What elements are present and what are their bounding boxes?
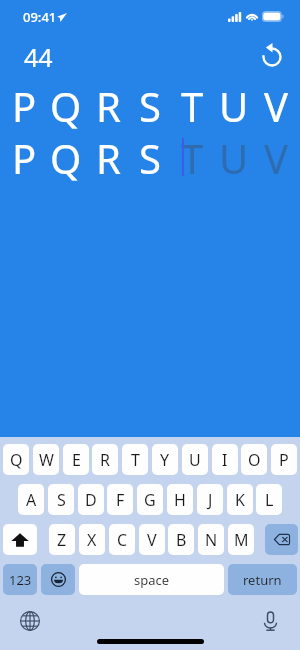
staticText: C [117,529,128,551]
staticText: P [12,79,37,131]
staticText: T [131,449,140,471]
staticText: G [144,489,156,511]
staticText: 09:41 [23,8,57,26]
staticText: J [208,489,213,511]
button[interactable]: D [78,484,104,515]
button[interactable]: S [48,484,74,515]
button[interactable]: Change keyboard [18,609,42,633]
button[interactable]: Q [3,444,29,475]
staticText: T [181,79,204,131]
staticText: B [176,529,187,551]
button[interactable]: C [109,524,135,555]
staticText: S [139,79,161,131]
staticText: return [243,571,282,589]
staticText: O [248,449,261,471]
staticText: K [235,489,245,511]
staticText: V [264,131,288,183]
staticText: U [189,449,201,471]
button[interactable]: Restart [254,38,290,74]
staticText: W [39,449,54,471]
button[interactable]: return [228,564,297,595]
staticText: D [85,489,97,511]
staticText: Q [50,131,82,183]
button[interactable]: A [18,484,44,515]
button[interactable]: I [212,444,238,475]
button[interactable]: Y [152,444,178,475]
button[interactable]: M [228,524,254,555]
staticText: S [139,131,161,183]
button[interactable]: U [182,444,208,475]
button[interactable]: Voice input [258,609,282,633]
button[interactable]: 123 [3,564,37,595]
button[interactable]: W [33,444,59,475]
button[interactable]: J [197,484,223,515]
staticText: U [219,131,249,183]
staticText: M [234,529,249,551]
staticText: Q [50,79,82,131]
button[interactable]: L [256,484,282,515]
button[interactable]: K [227,484,253,515]
staticText: R [96,131,121,183]
staticText: I [222,449,228,471]
button[interactable]: O [241,444,267,475]
staticText: P [12,131,37,183]
button[interactable]: G [137,484,163,515]
staticText: N [205,529,218,551]
button[interactable]: E [63,444,89,475]
staticText: 44 [24,40,53,74]
button[interactable]: Z [49,524,75,555]
button[interactable]: N [198,524,224,555]
button[interactable]: B [168,524,194,555]
button[interactable]: space [79,564,224,595]
button[interactable]: X [79,524,105,555]
staticText: L [265,489,274,511]
staticText: F [116,489,125,511]
staticText: R [100,449,110,471]
button[interactable]: F [107,484,133,515]
staticText: R [96,79,121,131]
staticText: V [147,529,157,551]
button[interactable]: H [167,484,193,515]
staticText: E [72,449,81,471]
staticText: X [87,529,97,551]
staticText: H [174,489,186,511]
button[interactable]: Shift [3,524,37,555]
button[interactable]: Emoji [41,564,75,595]
staticText: S [57,489,66,511]
staticText: Y [160,449,170,471]
button[interactable]: T [122,444,148,475]
staticText: Z [57,529,67,551]
staticText: T [181,131,204,183]
button[interactable]: P [271,444,297,475]
staticText: A [26,489,37,511]
button[interactable]: R [92,444,118,475]
staticText: V [264,79,288,131]
staticText: Q [10,449,23,471]
staticText: P [279,449,289,471]
staticText: 123 [9,571,32,589]
button[interactable]: Backspace [265,524,298,555]
staticText: U [219,79,249,131]
staticText: space [134,571,170,589]
button[interactable]: V [139,524,165,555]
